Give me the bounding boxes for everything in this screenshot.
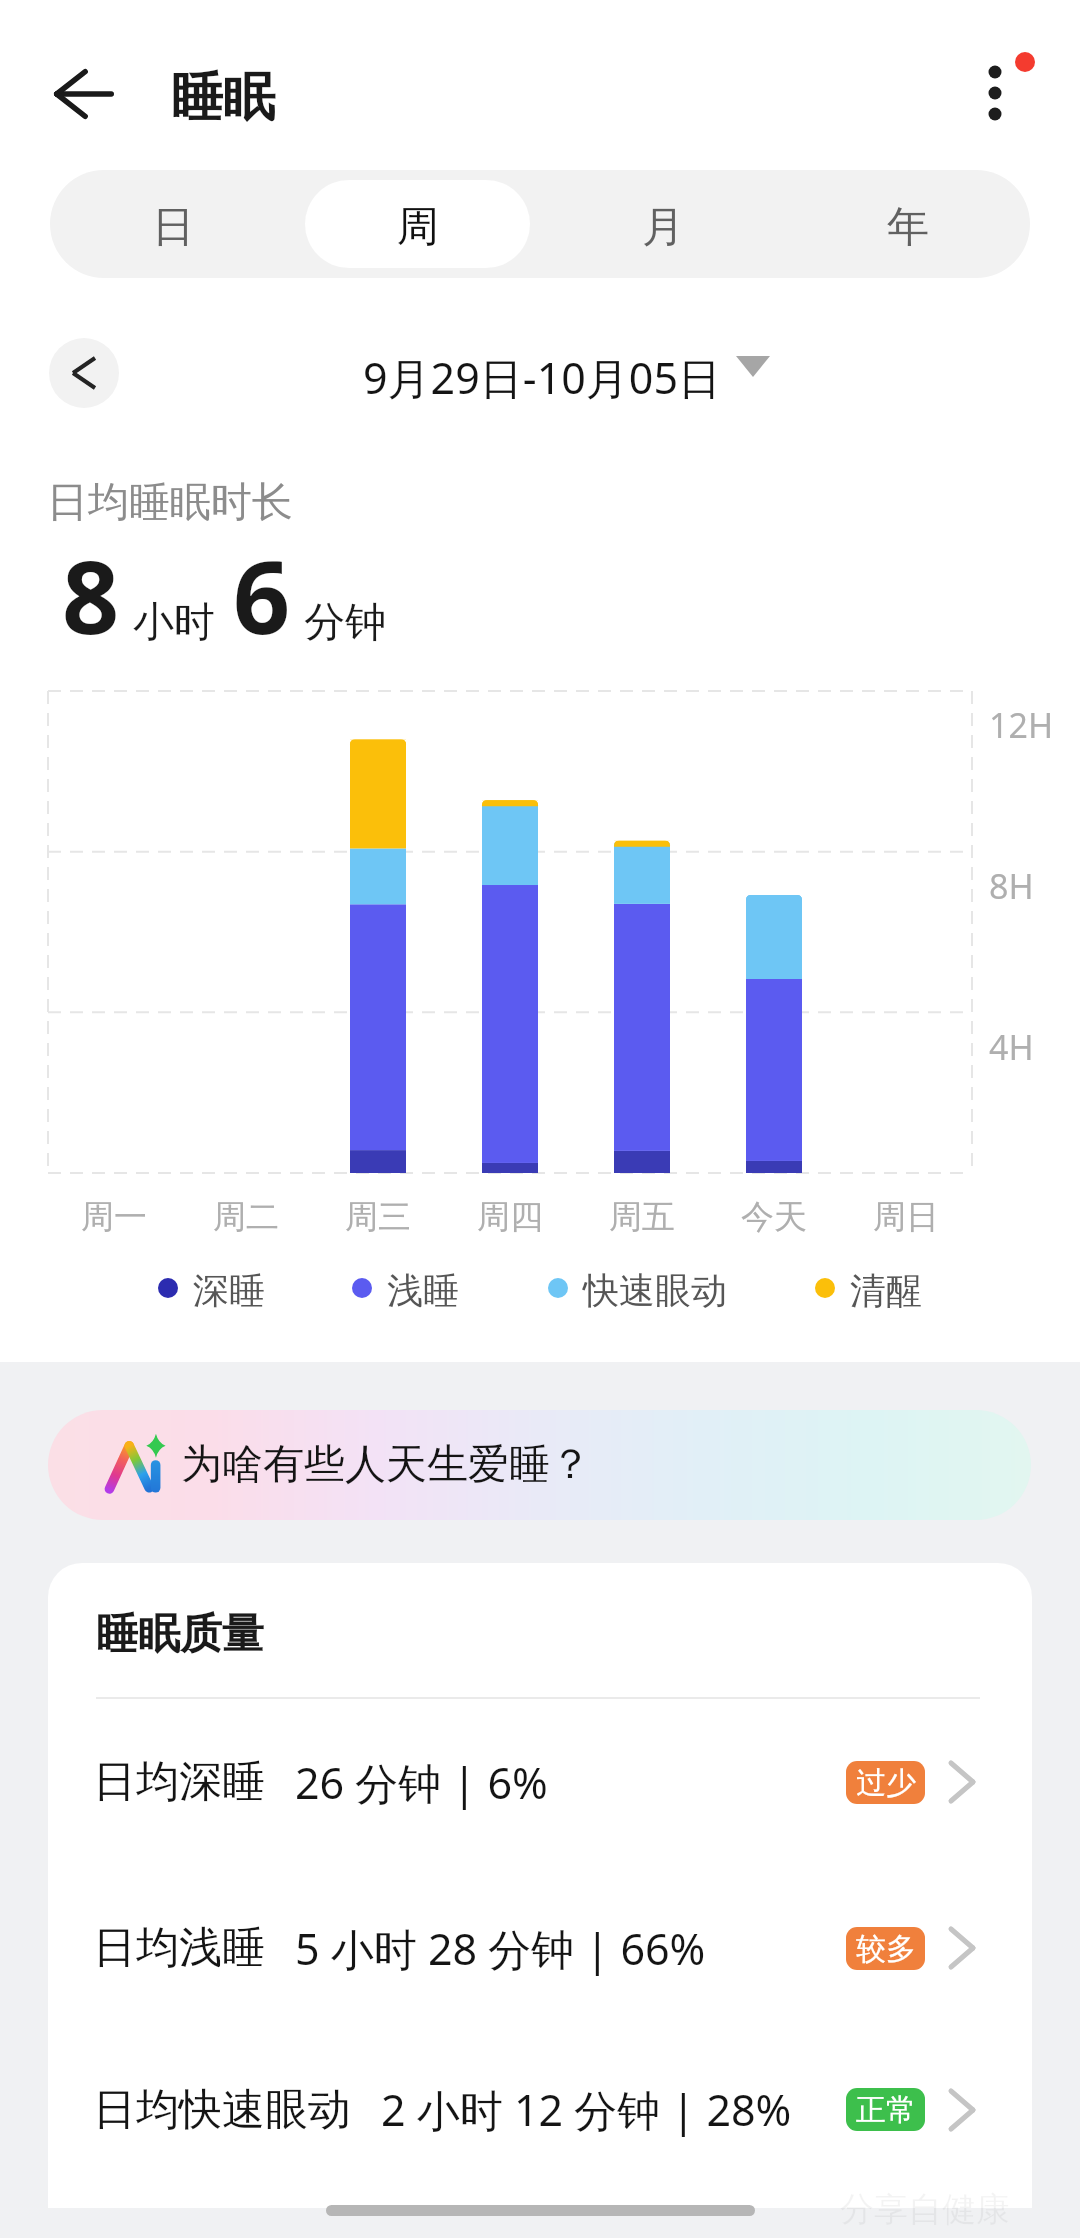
button[interactable]: 日 [60,180,285,268]
staticText: 正常 [856,2091,916,2129]
staticText: 12H [989,702,1054,748]
staticText: 日均快速眼动 [93,2083,351,2137]
button[interactable]: 9月29日-10月05日 [345,338,788,410]
staticText: 日 [152,201,194,254]
staticText: 5 小时 28 分钟 | 66% [295,1919,706,1978]
staticText: 清醒 [850,1268,922,1313]
button[interactable]: 为啥有些人天生爱睡？ [48,1410,1031,1520]
staticText: 8 [62,527,120,663]
staticText: 快速眼动 [583,1268,727,1313]
staticText: 周二 [213,1196,279,1238]
button[interactable]: 周 [305,180,530,268]
staticText: 日均浅睡 [93,1921,265,1975]
staticText: 分钟 [304,597,386,649]
button[interactable]: 月 [550,180,775,268]
staticText: 为啥有些人天生爱睡？ [181,1439,591,1491]
staticText: 年 [887,201,929,254]
staticText: 深睡 [193,1268,265,1313]
staticText: 睡眠质量 [96,1608,264,1661]
staticText: 日均深睡 [93,1755,265,1809]
button[interactable]: Back [32,42,136,146]
staticText: 8H [989,863,1034,909]
button[interactable]: 日均快速眼动 [48,2031,1032,2208]
staticText: 过少 [856,1764,916,1802]
staticText: 日均睡眠时长 [47,477,293,529]
staticText: 浅睡 [387,1268,459,1313]
staticText: 9月29日-10月05日 [363,348,722,407]
button[interactable]: Previous period [49,338,119,408]
staticText: 周日 [873,1196,939,1238]
staticText: 睡眠 [171,65,275,131]
button[interactable]: 日均浅睡 [48,1865,1032,2031]
button[interactable]: More options [943,38,1051,146]
staticText: 4H [989,1024,1034,1070]
button[interactable]: 日均深睡 [48,1699,1032,1865]
staticText: 周四 [477,1196,543,1238]
button[interactable]: 年 [795,180,1020,268]
staticText: 月 [642,201,684,254]
staticText: 今天 [741,1196,807,1238]
staticText: 周五 [609,1196,675,1238]
staticText: 周一 [81,1196,147,1238]
staticText: 6 [233,527,291,663]
staticText: 周三 [345,1196,411,1238]
staticText: 较多 [856,1930,916,1968]
staticText: 周 [397,201,439,254]
staticText: 2 小时 12 分钟 | 28% [381,2080,792,2139]
staticText: 26 分钟 | 6% [295,1753,548,1812]
staticText: 分享自健康 [840,2188,1010,2231]
staticText: 小时 [133,597,215,649]
